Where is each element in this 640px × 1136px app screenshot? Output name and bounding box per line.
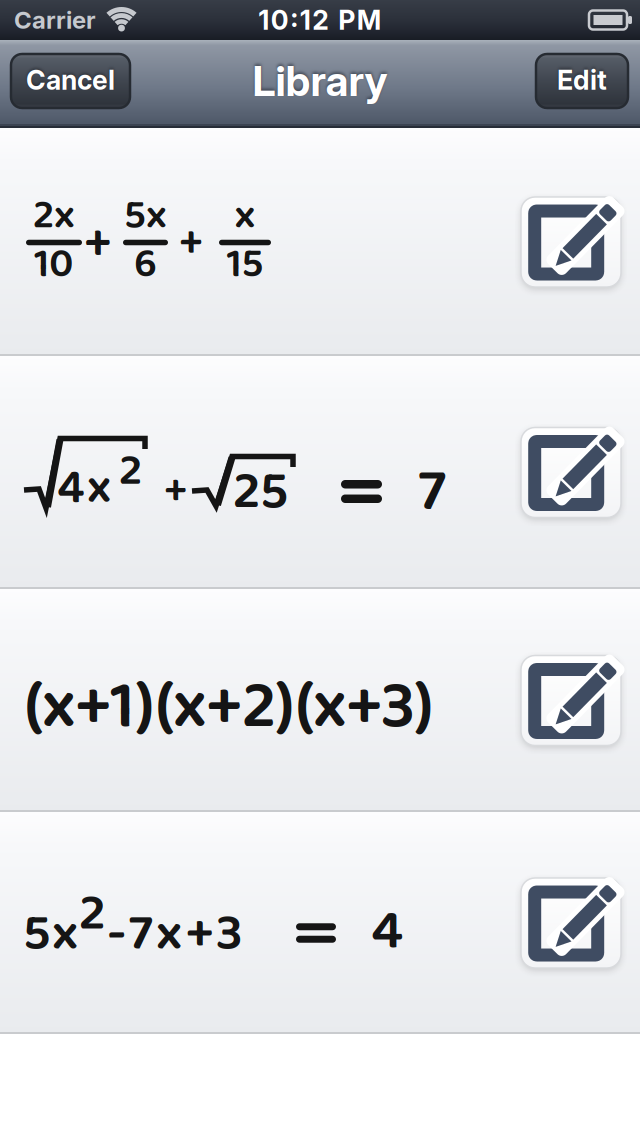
staticText: 7 — [418, 444, 446, 540]
staticText: 10 — [34, 231, 74, 297]
staticText: + — [84, 203, 112, 285]
button[interactable]: Edit — [536, 54, 628, 108]
staticText: 10:12 PM — [258, 4, 382, 36]
button[interactable]: Cancel — [11, 54, 130, 108]
staticText: Cancel — [26, 64, 115, 96]
button[interactable]: Edit equation — [521, 655, 621, 745]
staticText: Library — [252, 56, 387, 106]
staticText: x — [234, 183, 255, 249]
staticText: 25 — [233, 449, 288, 535]
staticText: (x+1)(x+2)(x+3) — [24, 654, 434, 761]
button[interactable]: Edit equation — [521, 197, 621, 287]
staticText: 4x — [57, 450, 111, 527]
staticText: 2 — [79, 872, 106, 956]
staticText: + — [179, 208, 203, 278]
staticText: Carrier — [14, 5, 96, 34]
staticText: 2 — [119, 435, 142, 508]
staticText: 5x — [23, 892, 78, 976]
staticText: 4 — [371, 887, 403, 977]
staticText: 2x — [33, 183, 75, 249]
button[interactable]: Edit equation — [521, 878, 621, 968]
button[interactable]: Edit equation — [521, 427, 621, 517]
staticText: Edit — [557, 64, 607, 96]
staticText: -7x+3 — [107, 892, 243, 976]
staticText: 5x — [124, 183, 167, 249]
staticText: 6 — [134, 231, 157, 297]
staticText: 15 — [226, 231, 263, 297]
staticText: + — [164, 457, 187, 526]
